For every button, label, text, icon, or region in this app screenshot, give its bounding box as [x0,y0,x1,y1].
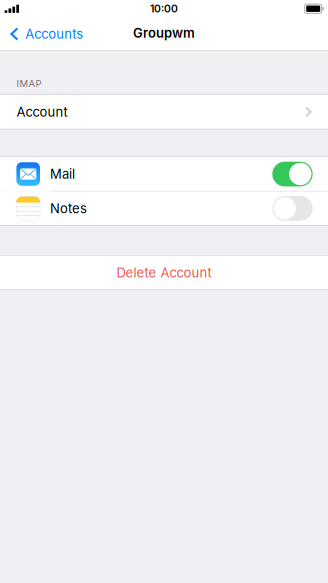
button[interactable]: Delete Account [0,256,328,290]
button[interactable]: Accounts [0,19,92,49]
staticText: Delete Account [116,265,211,281]
staticText: 10:00 [150,2,178,15]
staticText: Groupwm [133,25,195,41]
staticText: Accounts [25,26,83,42]
button[interactable]: Account [0,95,328,129]
button[interactable]: Notes [0,191,328,225]
staticText: Notes [50,200,87,216]
staticText: Account [16,104,67,120]
staticText: Mail [50,166,75,182]
button[interactable]: Mail [0,157,328,191]
staticText: IMAP [16,78,41,89]
